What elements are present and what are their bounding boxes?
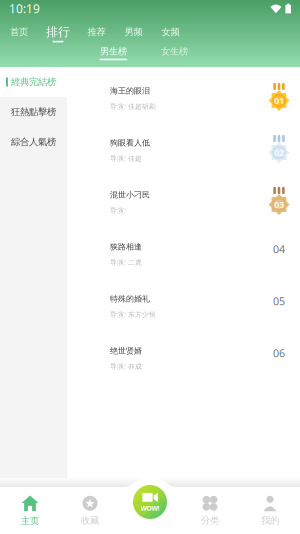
- staticText: 特殊的婚礼: [110, 294, 150, 304]
- staticText: 03: [274, 198, 284, 211]
- staticText: 06: [273, 346, 285, 360]
- button[interactable]: 狭路相逢: [67, 223, 300, 275]
- staticText: 导演: 佳超: [110, 154, 142, 163]
- button[interactable]: 經典完結榜: [0, 67, 67, 97]
- staticText: 海王的眼泪: [110, 86, 150, 96]
- button[interactable]: 特殊的婚礼: [67, 275, 300, 327]
- staticText: 首页: [10, 26, 28, 38]
- staticText: 經典完結榜: [11, 76, 56, 88]
- staticText: 导演: 二虎: [110, 258, 142, 267]
- staticText: 04: [273, 242, 285, 256]
- button[interactable]: 狗眼看人低: [67, 119, 300, 171]
- staticText: 狭路相逢: [110, 242, 142, 252]
- button[interactable]: 排行: [38, 19, 78, 41]
- button[interactable]: 收藏: [60, 487, 120, 534]
- button[interactable]: 主页: [0, 487, 60, 534]
- staticText: 排行: [46, 25, 70, 39]
- button[interactable]: 綜合人氣榜: [0, 127, 67, 157]
- button[interactable]: 狂熱點擊榜: [0, 97, 67, 127]
- button[interactable]: 首页: [0, 19, 38, 41]
- staticText: 綜合人氣榜: [11, 136, 56, 148]
- staticText: 主页: [21, 515, 39, 527]
- button[interactable]: 男生榜: [99, 45, 127, 61]
- staticText: 女频: [161, 26, 179, 38]
- staticText: 我的: [261, 515, 279, 526]
- button[interactable]: 海王的眼泪: [67, 67, 300, 119]
- button[interactable]: 混世小刁民: [67, 171, 300, 223]
- staticText: 02: [274, 146, 284, 159]
- button[interactable]: 绝世贤婿: [67, 327, 300, 379]
- staticText: 狂熱點擊榜: [11, 106, 56, 118]
- button[interactable]: 女生榜: [160, 45, 188, 61]
- staticText: 导演: 佳超胡剧: [110, 102, 156, 111]
- staticText: 推荐: [87, 26, 105, 38]
- staticText: 导演:: [110, 206, 126, 215]
- staticText: 男生榜: [100, 46, 127, 57]
- staticText: 10:19: [9, 0, 40, 16]
- staticText: 01: [274, 94, 284, 107]
- staticText: 女生榜: [161, 46, 188, 57]
- staticText: 导演: 亦成: [110, 362, 142, 371]
- staticText: WOW!: [140, 504, 159, 513]
- button[interactable]: 我的: [240, 487, 300, 534]
- button[interactable]: 女频: [152, 19, 189, 41]
- staticText: 混世小刁民: [110, 190, 150, 200]
- staticText: 收藏: [81, 515, 99, 526]
- button[interactable]: 分类: [180, 487, 240, 534]
- button[interactable]: 录制短视频: [129, 481, 171, 523]
- staticText: 05: [273, 294, 285, 308]
- staticText: 狗眼看人低: [110, 138, 150, 148]
- staticText: 分类: [201, 515, 219, 526]
- staticText: 导演: 东方少恒: [110, 310, 156, 319]
- button[interactable]: 男频: [115, 19, 152, 41]
- staticText: 绝世贤婿: [110, 346, 142, 356]
- button[interactable]: 推荐: [78, 19, 115, 41]
- staticText: 男频: [124, 26, 142, 38]
